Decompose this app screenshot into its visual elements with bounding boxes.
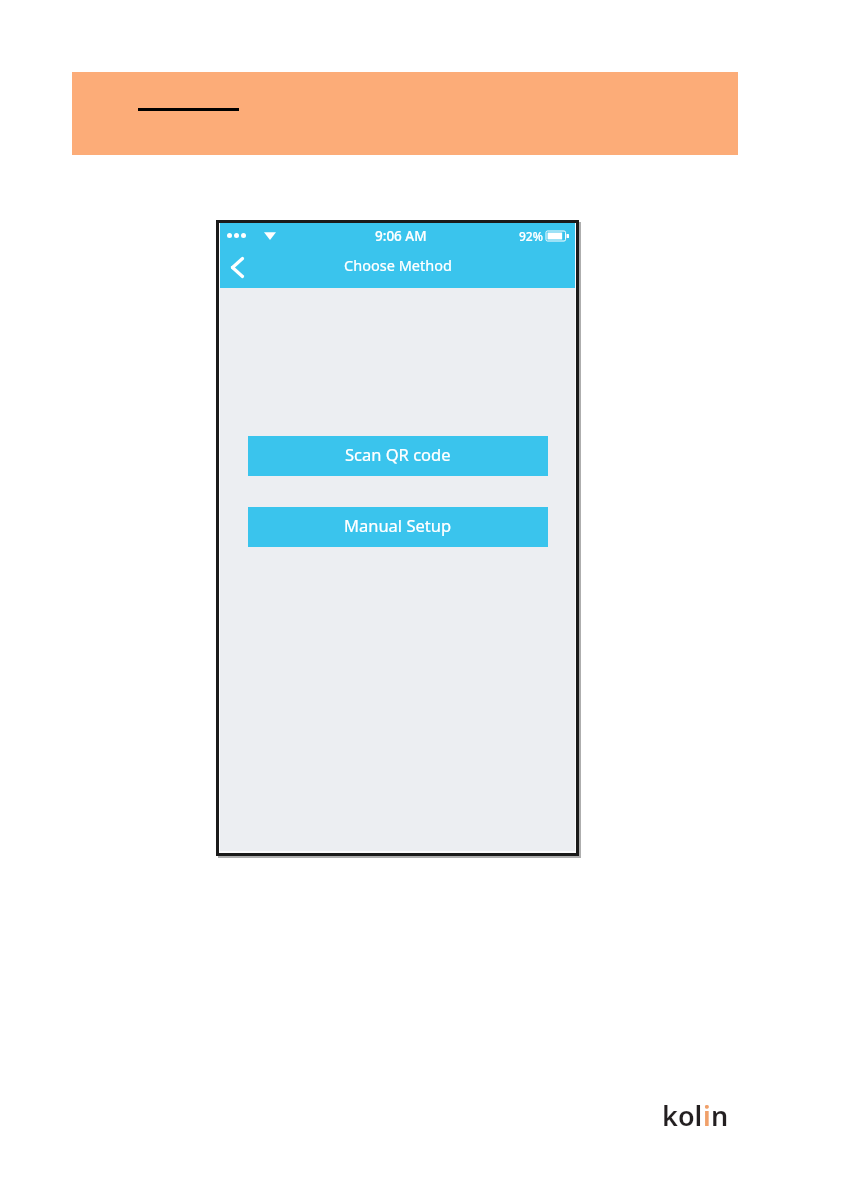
staticText: kol [662, 1097, 703, 1134]
staticText: n [711, 1097, 729, 1134]
staticText: i [703, 1097, 711, 1134]
button[interactable]: Manual Setup [248, 507, 548, 547]
staticText: 92% [519, 228, 543, 244]
staticText: Scan QR code [345, 443, 451, 465]
button[interactable]: Scan QR code [248, 436, 548, 476]
button[interactable]: Back [220, 248, 258, 287]
staticText: Manual Setup [344, 514, 452, 536]
staticText: Choose Method [344, 255, 452, 275]
staticText: 9:06 AM [375, 227, 427, 245]
